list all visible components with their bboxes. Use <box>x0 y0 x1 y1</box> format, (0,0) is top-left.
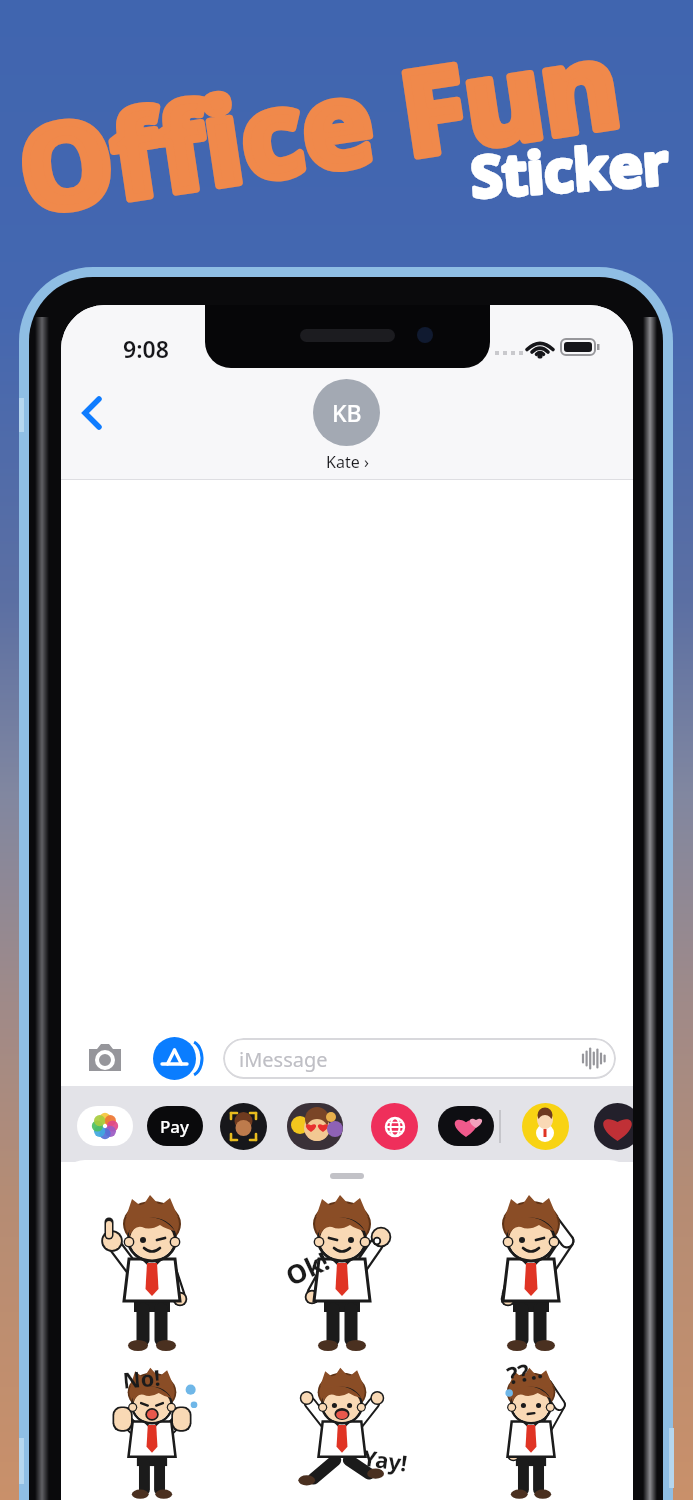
button[interactable]: Pay <box>147 1106 203 1146</box>
button[interactable] <box>371 1103 418 1150</box>
button[interactable]: iMessage <box>223 1038 616 1079</box>
staticText: Office Fun <box>0 0 673 254</box>
button[interactable]: Ok! <box>267 1195 417 1355</box>
staticText: KB <box>332 397 362 428</box>
button[interactable]: KB <box>313 379 380 446</box>
staticText: Sticker <box>437 121 693 209</box>
staticText: No! <box>121 1362 162 1395</box>
button[interactable]: No! <box>89 1368 215 1500</box>
button[interactable] <box>438 1106 494 1146</box>
staticText: Sticker <box>437 121 693 209</box>
button[interactable] <box>287 1103 343 1150</box>
button[interactable] <box>220 1103 267 1150</box>
staticText: iMessage <box>239 1046 328 1073</box>
staticText: ??.. <box>504 1353 546 1391</box>
button[interactable] <box>153 1037 196 1080</box>
staticText: Yay! <box>361 1442 409 1477</box>
button[interactable] <box>77 1195 227 1355</box>
button[interactable] <box>77 397 107 429</box>
staticText: Pay <box>160 1115 190 1138</box>
button[interactable] <box>83 1041 127 1075</box>
button[interactable] <box>456 1195 606 1355</box>
staticText: Ok! <box>280 1242 335 1293</box>
button[interactable] <box>522 1103 569 1150</box>
button[interactable] <box>594 1103 633 1150</box>
button[interactable]: ??.. <box>468 1368 594 1500</box>
button[interactable]: Yay! <box>279 1368 405 1500</box>
button[interactable] <box>77 1106 133 1146</box>
staticText: Office Fun <box>0 0 673 254</box>
staticText: 9:08 <box>96 333 196 364</box>
staticText: Kate › <box>326 451 369 473</box>
